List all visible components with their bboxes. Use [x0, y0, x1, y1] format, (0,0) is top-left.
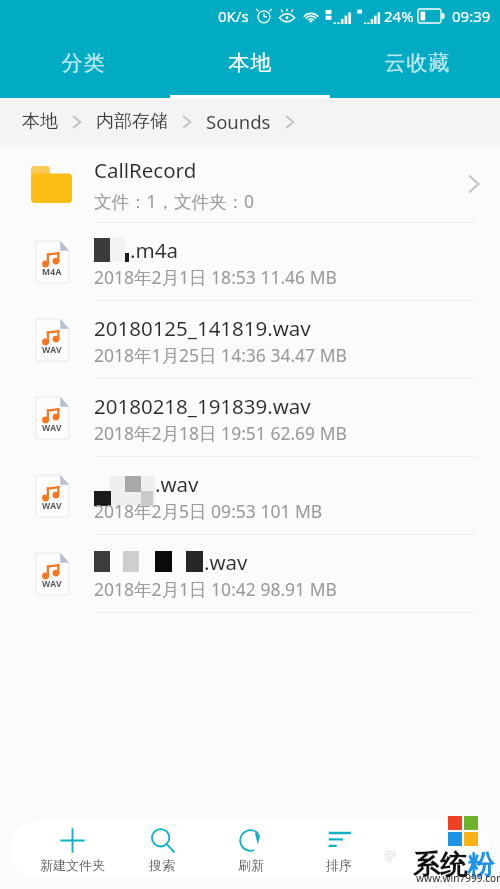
staticText: 搜索	[149, 857, 175, 873]
staticText: 系统	[413, 848, 467, 882]
staticText: .m4a	[130, 236, 178, 262]
button[interactable]: 搜索	[119, 821, 205, 878]
staticText: .wav	[155, 470, 199, 496]
staticText: 2018年2月1日 10:42 98.91 MB	[94, 577, 337, 601]
button[interactable]: M4A	[0, 223, 500, 301]
staticText: 本地	[228, 50, 272, 76]
button[interactable]: WAV	[0, 379, 500, 457]
button[interactable]: WAV	[0, 535, 500, 613]
staticText: M4A	[42, 266, 62, 278]
button[interactable]: 本地	[166, 31, 333, 98]
staticText: 分类	[61, 50, 105, 76]
staticText: 2018年1月25日 14:36 34.47 MB	[94, 343, 347, 367]
button[interactable]: 新建文件夹	[29, 821, 115, 878]
button[interactable]: Sounds	[206, 109, 271, 134]
staticText: 文件：1，文件夹：0	[94, 189, 255, 213]
staticText: 2018年2月5日 09:53 101 MB	[94, 499, 323, 523]
button[interactable]: CallRecord	[0, 145, 500, 223]
staticText: .wav	[204, 548, 248, 574]
button[interactable]: 更多	[372, 821, 408, 878]
staticText: WAV	[42, 422, 62, 434]
staticText: 20180125_141819.wav	[94, 314, 311, 340]
staticText: 粉	[467, 848, 494, 882]
staticText: 24%	[384, 6, 414, 26]
staticText: 刷新	[238, 857, 264, 873]
button[interactable]: 本地	[22, 110, 58, 133]
button[interactable]: WAV	[0, 457, 500, 535]
staticText: 0K/s	[218, 6, 249, 26]
staticText: www.win7999.com	[416, 871, 500, 885]
staticText: WAV	[42, 578, 62, 590]
staticText: WAV	[42, 344, 62, 356]
button[interactable]: 刷新	[208, 821, 294, 878]
staticText: 20180218_191839.wav	[94, 392, 311, 418]
staticText: 排序	[326, 857, 352, 873]
button[interactable]: WAV	[0, 301, 500, 379]
staticText: 新建文件夹	[40, 857, 105, 873]
staticText: WAV	[42, 500, 62, 512]
staticText: CallRecord	[94, 156, 197, 184]
button[interactable]: 内部存储	[96, 110, 168, 133]
staticText: 2018年2月1日 18:53 11.46 MB	[94, 265, 337, 289]
button[interactable]: 排序	[296, 821, 382, 878]
staticText: 09:39	[452, 6, 491, 26]
staticText: 2018年2月18日 19:51 62.69 MB	[94, 421, 347, 445]
staticText: 云收藏	[384, 50, 450, 76]
button[interactable]: 云收藏	[333, 31, 500, 98]
button[interactable]: 分类	[0, 31, 166, 98]
